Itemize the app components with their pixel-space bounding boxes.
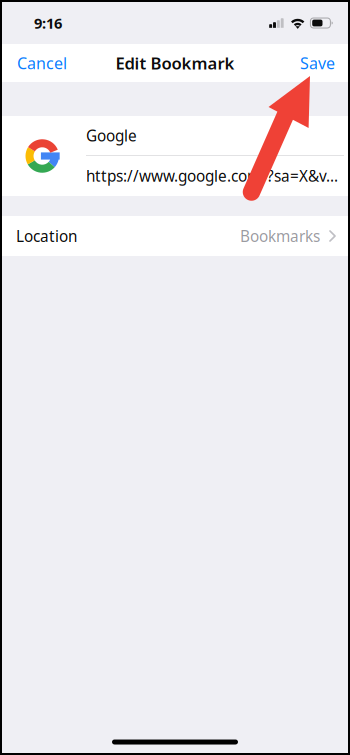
staticText: 9:16 [34,13,62,33]
staticText: Bookmarks [240,226,320,246]
staticText: Location [16,226,77,246]
button[interactable] [2,116,86,196]
staticText: https://www.google.com/?sa=X&v... [86,165,338,186]
staticText: Save [300,52,335,74]
staticText: Edit Bookmark [115,52,234,74]
staticText: Cancel [17,52,67,74]
button[interactable]: Save [288,44,348,82]
staticText: Google [86,125,137,146]
button[interactable]: Cancel [2,44,79,82]
button[interactable]: Location [2,216,348,256]
